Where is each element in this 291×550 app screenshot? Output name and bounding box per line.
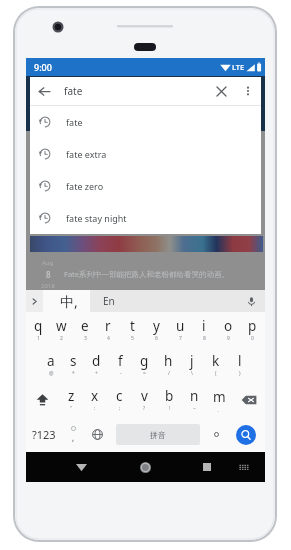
button[interactable]: u xyxy=(168,312,192,347)
staticText: o xyxy=(224,317,233,335)
staticText: j xyxy=(190,352,194,370)
button[interactable]: e xyxy=(73,312,96,347)
staticText: c xyxy=(116,387,123,405)
staticText: , xyxy=(72,432,75,443)
staticText: t xyxy=(130,317,135,335)
staticText: w xyxy=(56,317,67,335)
button[interactable]: ?123 xyxy=(26,417,62,452)
button[interactable]: 中, xyxy=(43,290,90,312)
staticText: q xyxy=(34,317,43,335)
staticText: fate xyxy=(66,116,83,128)
staticText: 2018 xyxy=(41,282,55,290)
button[interactable]: Back xyxy=(67,453,95,481)
staticText: s xyxy=(70,352,77,370)
staticText: ?123 xyxy=(32,427,56,442)
button[interactable]: z xyxy=(59,382,83,417)
button[interactable]: , xyxy=(62,417,85,452)
button[interactable]: Expand toolbar xyxy=(26,290,43,312)
button[interactable]: n xyxy=(182,382,207,417)
button[interactable]: b xyxy=(157,382,182,417)
button[interactable]: fate xyxy=(30,106,261,138)
staticText: 8 xyxy=(203,335,206,342)
button[interactable]: l xyxy=(228,347,252,382)
button[interactable]: a xyxy=(39,347,62,382)
staticText: / xyxy=(168,370,170,377)
button[interactable]: s xyxy=(62,347,85,382)
staticText: = xyxy=(143,370,146,377)
staticText: ) xyxy=(239,370,241,377)
button[interactable]: More options xyxy=(235,78,261,104)
staticText: b xyxy=(165,387,174,405)
staticText: @ xyxy=(49,370,54,377)
button[interactable]: Shift xyxy=(26,382,59,417)
button[interactable]: Home xyxy=(131,453,159,481)
staticText: e xyxy=(81,317,89,335)
staticText: v xyxy=(141,387,148,405)
button[interactable]: g xyxy=(132,347,156,382)
staticText: ! xyxy=(169,405,171,412)
button[interactable]: Search xyxy=(226,417,265,452)
button[interactable]: Clear query xyxy=(207,77,235,105)
button[interactable]: fate extra xyxy=(30,138,261,170)
staticText: u xyxy=(176,317,185,335)
button[interactable]: Period xyxy=(207,417,226,452)
button[interactable]: Backspace xyxy=(232,382,265,417)
button[interactable]: v xyxy=(132,382,157,417)
button[interactable]: x xyxy=(83,382,107,417)
staticText: ( xyxy=(215,370,217,377)
button[interactable]: 拼音 xyxy=(116,424,200,445)
button[interactable]: Voice input xyxy=(243,293,259,309)
staticText: fate stay night xyxy=(66,212,127,224)
staticText: 2 xyxy=(60,335,63,342)
staticText: p xyxy=(248,317,257,335)
staticText: r xyxy=(105,317,111,335)
button[interactable]: Change keyboard language xyxy=(85,417,109,452)
button[interactable]: h xyxy=(156,347,180,382)
staticText: 9 xyxy=(227,335,230,342)
button[interactable]: En xyxy=(90,290,265,312)
staticText: 1 xyxy=(37,335,40,342)
staticText: a xyxy=(47,352,55,370)
staticText: 3 xyxy=(84,335,87,342)
button[interactable]: y xyxy=(144,312,168,347)
staticText: i xyxy=(202,317,206,335)
staticText: x xyxy=(91,387,99,405)
staticText: ~ xyxy=(193,405,196,412)
button[interactable]: j xyxy=(180,347,204,382)
button[interactable]: fate zero xyxy=(30,170,261,202)
staticText: d xyxy=(92,352,101,370)
button[interactable]: t xyxy=(120,312,144,347)
button[interactable]: w xyxy=(50,312,73,347)
button[interactable]: k xyxy=(204,347,228,382)
staticText: Aug xyxy=(42,259,54,267)
staticText: fate extra xyxy=(66,148,107,160)
button[interactable]: Change keyboard xyxy=(230,453,258,481)
button[interactable]: Back xyxy=(30,77,58,105)
staticText: " xyxy=(70,405,73,412)
staticText: \ xyxy=(191,370,193,377)
staticText: fate xyxy=(64,84,83,98)
button[interactable]: i xyxy=(192,312,216,347)
staticText: 6 xyxy=(155,335,158,342)
staticText: + xyxy=(95,370,98,377)
staticText: Fate系列中一部能把路人和老粉都给看哭的动画。 xyxy=(64,269,230,279)
staticText: 5 xyxy=(131,335,134,342)
button[interactable]: r xyxy=(96,312,120,347)
staticText: ; xyxy=(119,405,121,412)
staticText: y xyxy=(153,317,160,335)
staticText: En xyxy=(103,294,115,308)
staticText: n xyxy=(190,387,199,405)
button[interactable]: p xyxy=(240,312,264,347)
staticText: 中, xyxy=(60,292,78,311)
staticText: g xyxy=(140,352,149,370)
button[interactable]: f xyxy=(108,347,132,382)
staticText: fate zero xyxy=(66,180,104,192)
staticText: LTE xyxy=(232,62,245,72)
button[interactable]: q xyxy=(27,312,50,347)
button[interactable]: d xyxy=(85,347,108,382)
button[interactable]: m xyxy=(207,382,232,417)
button[interactable]: fate stay night xyxy=(30,202,261,234)
button[interactable]: o xyxy=(216,312,240,347)
button[interactable]: Recent apps xyxy=(193,453,221,481)
button[interactable]: c xyxy=(107,382,132,417)
